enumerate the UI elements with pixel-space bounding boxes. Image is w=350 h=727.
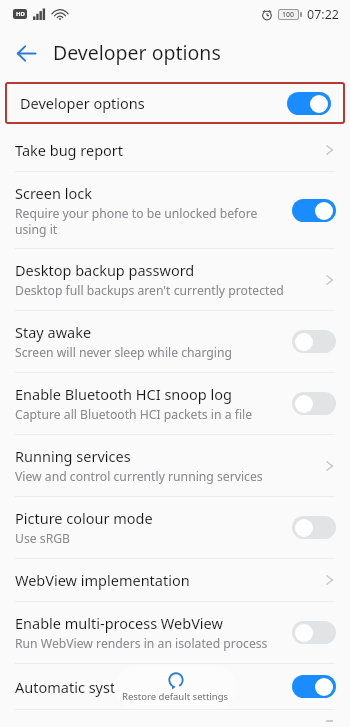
staticText: WebView implementation xyxy=(15,570,190,590)
staticText: View and control currently running servi… xyxy=(15,468,263,485)
staticText: Screen lock xyxy=(15,183,92,203)
button[interactable]: Automatic system updates xyxy=(0,664,350,709)
button[interactable]: Off xyxy=(292,516,336,539)
button[interactable]: Take bug report xyxy=(0,129,350,171)
staticText: Screen will never sleep while charging xyxy=(15,344,233,361)
staticText: Require your phone to be unlocked before… xyxy=(15,205,258,237)
staticText: Developer options xyxy=(20,93,145,113)
button[interactable]: Picture colour mode xyxy=(0,497,350,558)
button[interactable]: WebView implementation xyxy=(0,559,350,601)
button[interactable]: Back xyxy=(6,33,46,73)
staticText: Developer options xyxy=(53,39,221,66)
staticText: 100 xyxy=(282,10,295,19)
button[interactable]: Developer options xyxy=(5,82,345,124)
button[interactable]: Off xyxy=(292,330,336,353)
staticText: Enable Bluetooth HCI snoop log xyxy=(15,384,232,404)
staticText: HD xyxy=(16,10,25,18)
staticText: Desktop backup password xyxy=(15,260,195,280)
staticText: Desktop full backups aren't currently pr… xyxy=(15,282,284,299)
staticText: Automatic system updates xyxy=(15,677,196,697)
button[interactable]: Stay awake xyxy=(0,311,350,372)
button[interactable]: On xyxy=(292,675,336,698)
staticText: Run WebView renders in an isolated proce… xyxy=(15,635,268,652)
staticText: Use sRGB xyxy=(15,530,71,547)
staticText: Running services xyxy=(15,446,131,466)
staticText: Picture colour mode xyxy=(15,508,153,528)
staticText: Restore default settings xyxy=(122,690,229,703)
button[interactable]: Off xyxy=(292,392,336,415)
staticText: Enable multi-process WebView xyxy=(15,613,223,633)
button[interactable]: On xyxy=(287,92,331,115)
button[interactable]: Enable multi-process WebView xyxy=(0,602,350,663)
button[interactable]: Screen lock xyxy=(0,172,350,248)
button[interactable]: Restore default settings xyxy=(114,666,237,708)
staticText: Capture all Bluetooth HCI packets in a f… xyxy=(15,406,253,423)
staticText: Stay awake xyxy=(15,322,92,342)
staticText: Take bug report xyxy=(15,140,124,160)
button[interactable]: On xyxy=(292,199,336,222)
button[interactable]: Desktop backup password xyxy=(0,249,350,310)
button[interactable]: Off xyxy=(292,621,336,644)
button[interactable]: Enable Bluetooth HCI snoop log xyxy=(0,373,350,434)
button[interactable]: Running services xyxy=(0,435,350,496)
staticText: 07:22 xyxy=(307,6,339,23)
